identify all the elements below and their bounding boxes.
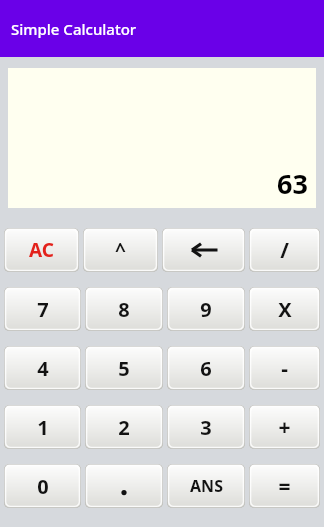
button[interactable]: 2 [85, 405, 163, 449]
staticText: ^ [115, 237, 126, 263]
staticText: = [278, 472, 291, 501]
button[interactable]: AC [4, 228, 79, 272]
staticText: 3 [200, 414, 212, 441]
staticText: AC [29, 237, 54, 263]
staticText: 6 [200, 355, 212, 382]
staticText: 4 [37, 355, 49, 382]
button[interactable]: + [249, 405, 320, 449]
staticText: 8 [118, 296, 130, 323]
staticText: / [280, 236, 289, 265]
button[interactable]: 7 [4, 287, 81, 331]
staticText: 7 [37, 296, 49, 323]
staticText: ANS [190, 475, 223, 497]
button[interactable]: / [249, 228, 320, 272]
staticText: X [278, 296, 292, 323]
staticText: 0 [37, 473, 49, 500]
staticText: 1 [37, 414, 49, 441]
button[interactable]: 6 [167, 346, 245, 390]
button[interactable]: 3 [167, 405, 245, 449]
button[interactable]: ^ [83, 228, 158, 272]
staticText: - [281, 354, 288, 383]
button[interactable]: Decimal point [85, 464, 163, 508]
button[interactable]: ANS [167, 464, 245, 508]
button[interactable]: Backspace [162, 228, 245, 272]
staticText: 2 [118, 414, 130, 441]
button[interactable]: 4 [4, 346, 81, 390]
staticText: + [278, 413, 291, 442]
button[interactable]: X [249, 287, 320, 331]
button[interactable]: 8 [85, 287, 163, 331]
button[interactable]: 1 [4, 405, 81, 449]
button[interactable]: = [249, 464, 320, 508]
staticText: 9 [200, 296, 212, 323]
staticText: Simple Calculator [11, 19, 137, 39]
staticText: 63 [277, 165, 308, 202]
button[interactable]: - [249, 346, 320, 390]
staticText: 5 [118, 355, 130, 382]
button[interactable]: 9 [167, 287, 245, 331]
button[interactable]: 5 [85, 346, 163, 390]
button[interactable]: 0 [4, 464, 81, 508]
